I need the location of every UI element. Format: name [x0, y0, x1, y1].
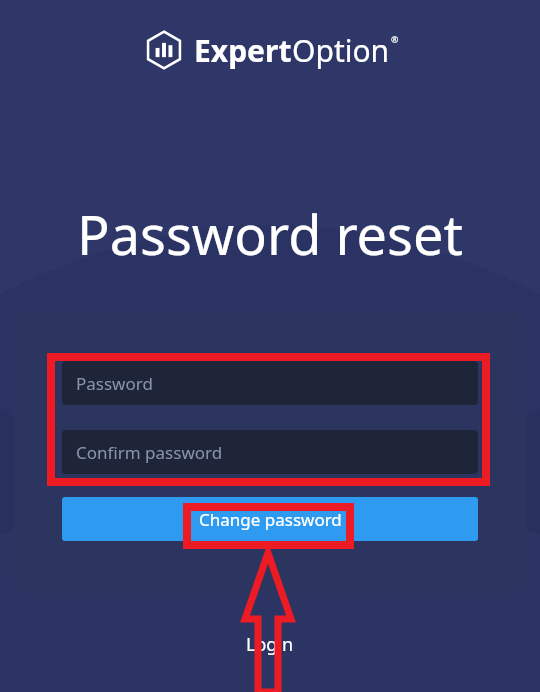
staticText: Confirm password [76, 441, 223, 464]
button[interactable]: ExpertOption logo [141, 26, 399, 74]
button[interactable]: Confirm password [62, 430, 478, 474]
staticText: ® [391, 33, 399, 45]
staticText: Option [292, 30, 390, 71]
button[interactable]: Login [236, 628, 304, 661]
staticText: Change password [199, 508, 342, 531]
staticText: Password reset [77, 197, 463, 271]
button[interactable]: Password [62, 361, 478, 405]
staticText: Password [76, 372, 153, 395]
button[interactable]: Change password [62, 497, 478, 541]
staticText: Login [246, 632, 294, 657]
staticText: Expert [194, 30, 292, 71]
